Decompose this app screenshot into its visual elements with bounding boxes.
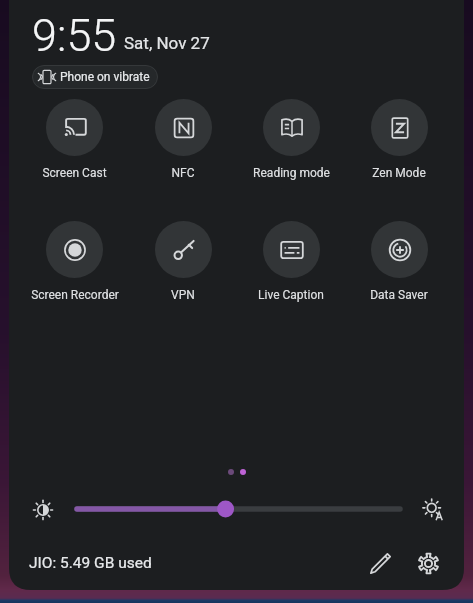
button[interactable]: Phone on vibrate: [32, 65, 158, 89]
button[interactable]: NFC: [129, 99, 237, 180]
staticText: Screen Recorder: [31, 288, 119, 302]
button[interactable]: Screen Cast: [20, 99, 129, 180]
staticText: Zen Mode: [372, 166, 426, 180]
button[interactable]: Zen Mode: [345, 99, 453, 180]
button[interactable]: Brightness: [26, 493, 59, 526]
button[interactable]: Data Saver: [345, 221, 453, 302]
button[interactable]: VPN: [129, 221, 237, 302]
staticText: NFC: [171, 166, 195, 180]
button[interactable]: Settings: [410, 545, 446, 581]
button[interactable]: Screen Recorder: [20, 221, 129, 302]
button[interactable]: Auto brightness: [416, 493, 449, 526]
staticText: VPN: [171, 288, 195, 302]
staticText: 9:55: [32, 9, 117, 62]
button[interactable]: Live Caption: [237, 221, 345, 302]
button[interactable]: Reading mode: [237, 99, 345, 180]
staticText: Phone on vibrate: [60, 70, 150, 84]
staticText: Live Caption: [258, 288, 324, 302]
staticText: Reading mode: [253, 166, 330, 180]
button[interactable]: JIO: 5.49 GB used: [29, 554, 152, 572]
staticText: Screen Cast: [42, 166, 107, 180]
staticText: Data Saver: [370, 288, 428, 302]
staticText: Sat, Nov 27: [124, 33, 210, 53]
button[interactable]: Edit: [362, 545, 398, 581]
